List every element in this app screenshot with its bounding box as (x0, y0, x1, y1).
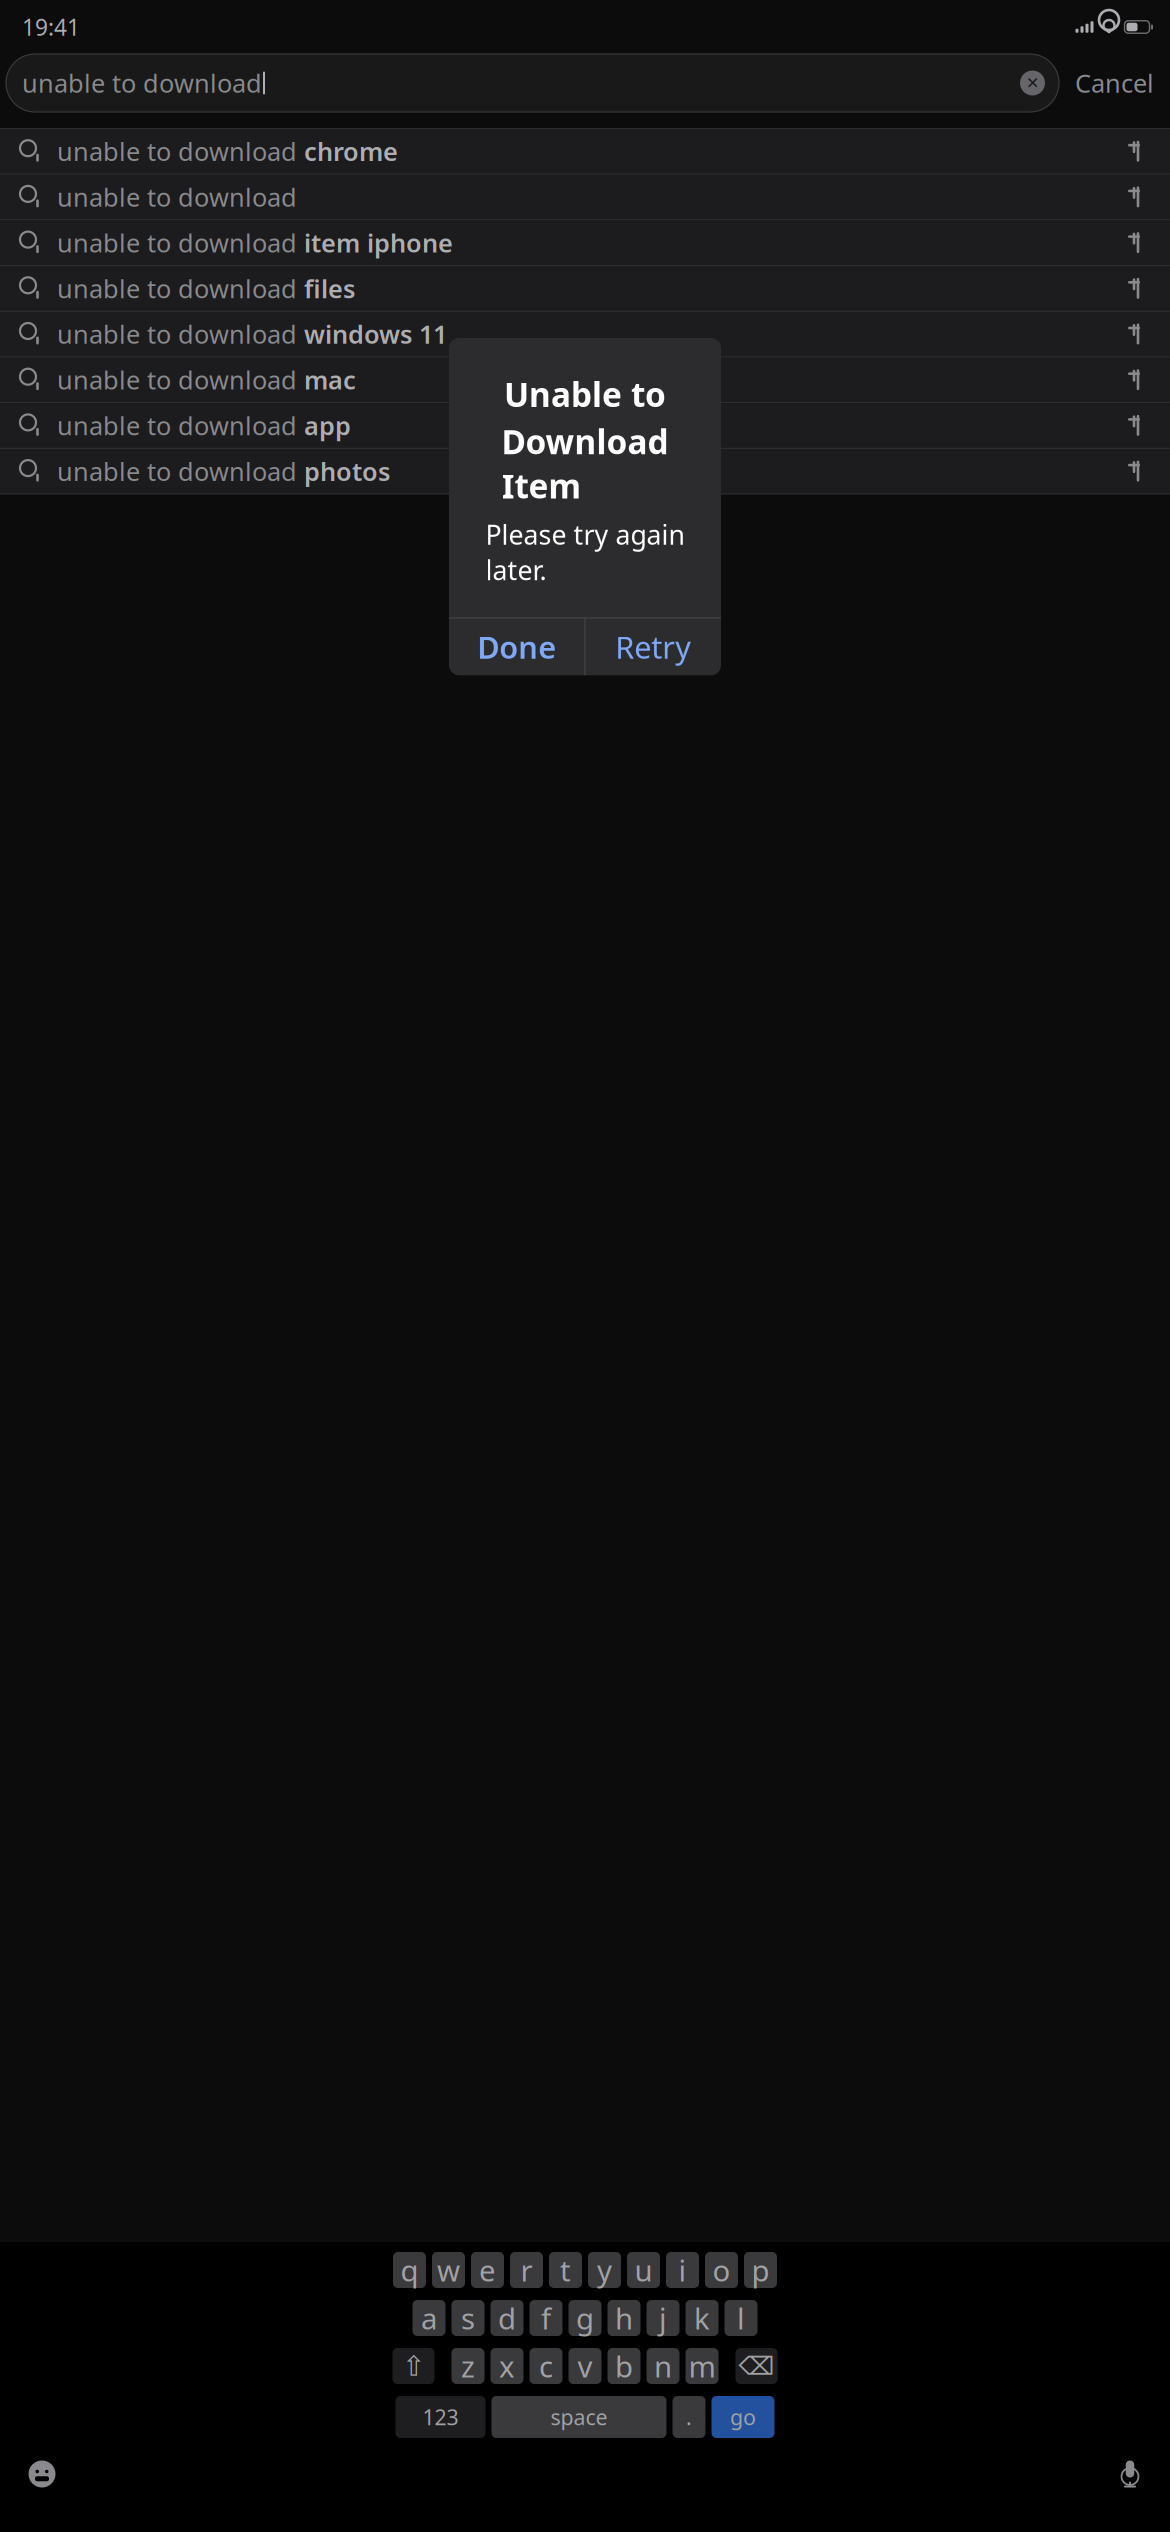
staticText: b (615, 2346, 633, 2385)
staticText: d (498, 2298, 516, 2337)
button[interactable]: k (685, 2300, 718, 2336)
button[interactable]: x (490, 2348, 523, 2384)
staticText: s (461, 2298, 475, 2337)
staticText: z (461, 2346, 475, 2385)
button[interactable]: Done (449, 618, 585, 675)
button[interactable]: j (646, 2300, 679, 2336)
button[interactable]: z (451, 2348, 484, 2384)
staticText: l (737, 2298, 745, 2337)
button[interactable]: m (685, 2348, 718, 2384)
staticText: g (576, 2298, 594, 2337)
staticText: w (437, 2250, 460, 2289)
button[interactable]: p (744, 2252, 777, 2288)
button[interactable]: b (607, 2348, 640, 2384)
button[interactable]: Shift (392, 2348, 434, 2384)
staticText: k (694, 2298, 710, 2337)
staticText: Unable to (504, 372, 666, 416)
button[interactable]: f (529, 2300, 562, 2336)
staticText: unable to download (57, 134, 304, 168)
staticText: chrome (304, 134, 398, 168)
button[interactable]: q (393, 2252, 426, 2288)
button[interactable]: Dictation (1116, 2458, 1144, 2490)
button[interactable]: Retry (585, 618, 721, 675)
staticText: e (479, 2250, 496, 2289)
button[interactable]: h (607, 2300, 640, 2336)
staticText: h (615, 2298, 633, 2337)
button[interactable]: n (646, 2348, 679, 2384)
staticText: ⇧ (402, 2350, 425, 2382)
staticText: unable to download (22, 66, 262, 100)
button[interactable]: t (549, 2252, 582, 2288)
button[interactable]: d (490, 2300, 523, 2336)
staticText: j (659, 2298, 667, 2337)
button[interactable]: unable to download (6, 54, 1059, 112)
staticText: n (654, 2346, 672, 2385)
button[interactable]: unable to download (0, 403, 1170, 449)
button[interactable]: unable to download (0, 311, 1170, 357)
staticText: o (712, 2250, 730, 2289)
staticText: u (634, 2250, 652, 2289)
button[interactable]: Cancel (1059, 54, 1164, 112)
button[interactable]: unable to download (0, 220, 1170, 266)
button[interactable]: w (432, 2252, 465, 2288)
staticText: r (520, 2250, 532, 2289)
button[interactable]: e (471, 2252, 504, 2288)
staticText: ✕ (1026, 74, 1039, 92)
button[interactable]: unable to download (0, 266, 1170, 311)
staticText: space (550, 2403, 607, 2431)
button[interactable]: u (627, 2252, 660, 2288)
staticText: t (560, 2250, 571, 2289)
staticText: q (400, 2250, 418, 2289)
staticText: unable to download (57, 363, 304, 396)
staticText: files (304, 271, 355, 305)
staticText: unable to download (57, 317, 304, 351)
staticText: 123 (422, 2403, 458, 2431)
staticText: a (421, 2298, 437, 2337)
staticText: Please try again later. (485, 517, 684, 588)
staticText: go (730, 2403, 756, 2431)
button[interactable]: go (711, 2396, 774, 2438)
staticText: v (577, 2346, 592, 2385)
button[interactable]: Delete (735, 2348, 777, 2384)
staticText: unable to download (57, 271, 304, 305)
staticText: unable to download (57, 409, 304, 442)
staticText: app (304, 409, 351, 442)
button[interactable]: unable to download (0, 357, 1170, 403)
button[interactable]: unable to download (0, 174, 1170, 220)
staticText: Retry (615, 626, 691, 667)
staticText: x (499, 2346, 515, 2385)
staticText: p (751, 2250, 769, 2289)
staticText: ⌫ (738, 2352, 774, 2380)
button[interactable]: v (568, 2348, 601, 2384)
staticText: unable to download (57, 454, 304, 488)
button[interactable]: space (491, 2396, 666, 2438)
button[interactable]: r (510, 2252, 543, 2288)
button[interactable]: s (451, 2300, 484, 2336)
button[interactable]: c (529, 2348, 562, 2384)
staticText: i (678, 2250, 686, 2289)
button[interactable]: Emoji keyboard (26, 2458, 58, 2490)
staticText: f (541, 2298, 551, 2337)
button[interactable]: g (568, 2300, 601, 2336)
staticText: mac (304, 363, 356, 396)
button[interactable]: . (672, 2396, 705, 2438)
button[interactable]: o (705, 2252, 738, 2288)
staticText: 19:41 (22, 12, 80, 42)
button[interactable]: y (588, 2252, 621, 2288)
staticText: Done (477, 626, 556, 667)
staticText: item iphone (304, 226, 453, 259)
button[interactable]: 123 (395, 2396, 485, 2438)
staticText: Cancel (1075, 66, 1154, 100)
button[interactable]: i (666, 2252, 699, 2288)
staticText: Download Item (501, 419, 668, 508)
staticText: . (686, 2403, 692, 2431)
button[interactable]: unable to download (0, 449, 1170, 494)
staticText: windows 11 (304, 317, 447, 351)
button[interactable]: a (412, 2300, 445, 2336)
staticText: unable to download (57, 180, 297, 214)
button[interactable]: l (724, 2300, 757, 2336)
staticText: photos (304, 454, 390, 488)
button[interactable]: unable to download (0, 129, 1170, 174)
staticText: unable to download (57, 226, 304, 259)
staticText: y (597, 2250, 612, 2289)
